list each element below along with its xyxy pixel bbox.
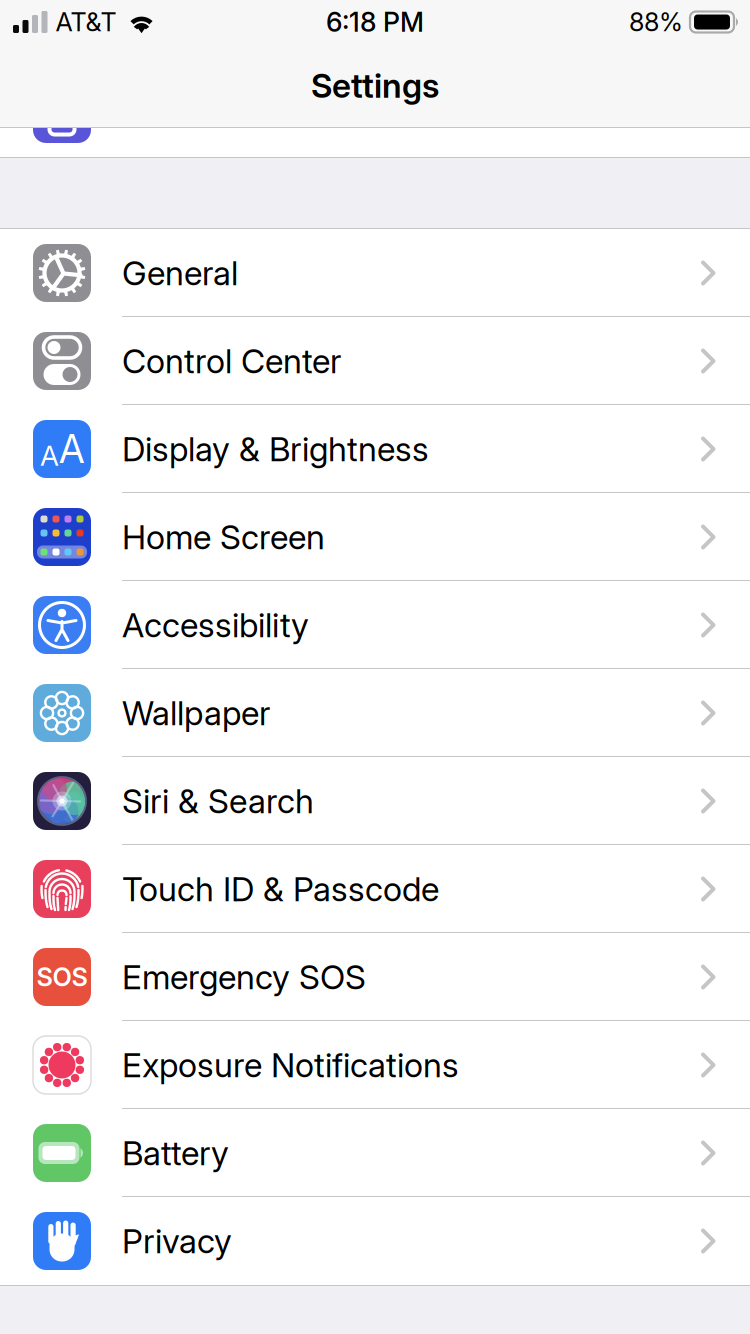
staticText: Exposure Notifications	[122, 1045, 459, 1085]
staticText: Siri & Search	[122, 781, 314, 821]
staticText: General	[122, 253, 238, 293]
button[interactable]: Touch ID & Passcode	[0, 845, 750, 933]
staticText: 88%	[629, 7, 683, 37]
staticText: Control Center	[122, 341, 341, 381]
staticText: A	[40, 438, 59, 472]
staticText: Settings	[311, 65, 439, 106]
button[interactable]: Exposure Notifications	[0, 1021, 750, 1109]
button[interactable]: Siri & Search	[0, 757, 750, 845]
button[interactable]: Privacy	[0, 1197, 750, 1285]
staticText: A	[59, 426, 84, 472]
button[interactable]: Battery	[0, 1109, 750, 1197]
button[interactable]: Home Screen	[0, 493, 750, 581]
staticText: Display & Brightness	[122, 429, 429, 469]
staticText: 6:18 PM	[326, 6, 424, 38]
button[interactable]: Accessibility	[0, 581, 750, 669]
button[interactable]: SOS	[0, 933, 750, 1021]
button[interactable]: General	[0, 229, 750, 317]
staticText: AT&T	[55, 7, 116, 37]
staticText: Battery	[122, 1133, 229, 1173]
button[interactable]: Control Center	[0, 317, 750, 405]
staticText: SOS	[36, 962, 87, 992]
staticText: Home Screen	[122, 517, 325, 557]
staticText: Accessibility	[122, 605, 309, 645]
staticText: Touch ID & Passcode	[122, 869, 439, 909]
staticText: Emergency SOS	[122, 957, 366, 997]
button[interactable]: Wallpaper	[0, 669, 750, 757]
staticText: Wallpaper	[122, 693, 270, 733]
staticText: Privacy	[122, 1221, 232, 1261]
button[interactable]: A	[0, 405, 750, 493]
